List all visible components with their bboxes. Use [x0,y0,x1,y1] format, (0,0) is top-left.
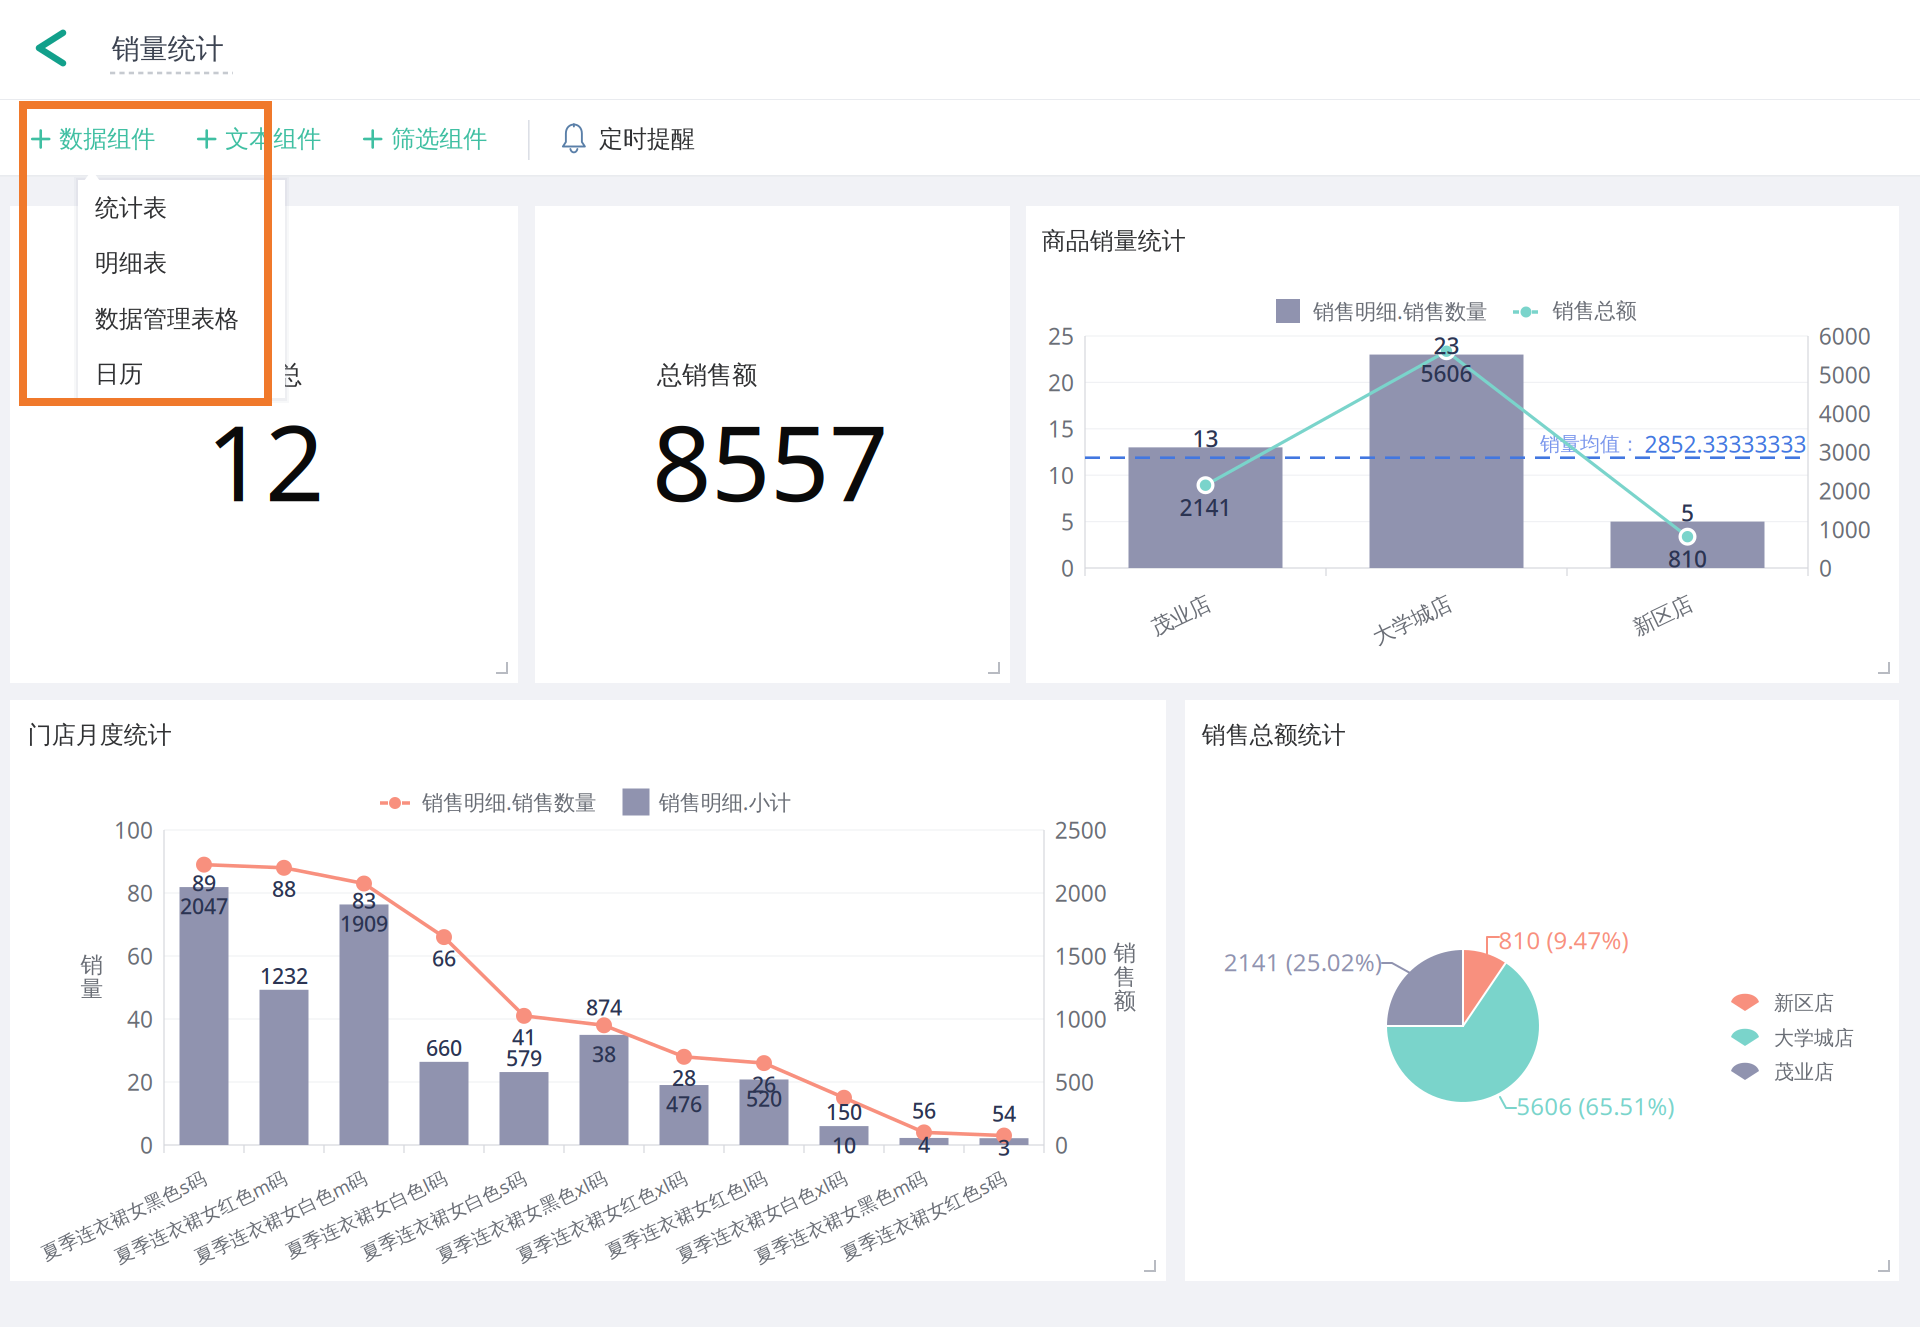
staticText: 大学城店 [1774,1026,1854,1050]
staticText: 810 [1668,544,1707,574]
staticText: 2000 [1055,878,1107,908]
staticText: 2000 [1819,476,1871,506]
staticText: 1232 [260,962,308,990]
staticText: 夏季连衣裙女黑色s码 [34,1203,214,1228]
staticText: 茂业店 [1149,603,1212,629]
staticText: 商品销量统计 [1042,226,1186,256]
staticText: 5 [1061,506,1074,537]
staticText: 10 [832,1131,856,1159]
staticText: 476 [666,1090,702,1118]
staticText: 13 [1192,423,1218,453]
staticText: 大学城店 [1370,607,1454,633]
staticText: 25 [1048,321,1074,351]
staticText: 5 [1681,497,1694,528]
staticText: 统计表 [95,193,167,223]
staticText: 2141 [1179,492,1231,522]
staticText: 销 [80,951,103,979]
staticText: 150 [826,1098,862,1126]
staticText: 89 [192,869,216,897]
button[interactable]: 日历 [78,347,285,401]
staticText: 1000 [1819,514,1871,544]
staticText: 额 [1113,987,1136,1015]
staticText: 茂业店 [1774,1060,1834,1084]
staticText: 售 [1113,963,1136,991]
staticText: 销量统计 [112,32,224,66]
staticText: 夏季连衣裙女白色xl码 [669,1204,855,1229]
staticText: 数据管理表格 [95,304,239,334]
staticText: 40 [127,1004,153,1034]
staticText: 新区店 [1774,991,1834,1015]
staticText: 54 [992,1099,1016,1128]
staticText: 874 [586,993,622,1021]
staticText: 4 [918,1130,930,1158]
button[interactable]: Back [14,10,88,86]
staticText: 夏季连衣裙女红色l码 [598,1202,774,1227]
staticText: 1500 [1055,941,1107,971]
button[interactable]: 明细表 [78,236,285,290]
staticText: 筛选组件 [391,124,487,154]
staticText: 夏季连衣裙女红色s码 [834,1203,1014,1228]
staticText: 0 [1055,1130,1068,1160]
button[interactable]: 数据管理表格 [78,292,285,346]
staticText: 660 [426,1034,462,1062]
staticText: 定时提醒 [599,124,695,154]
staticText: 销售明细.小计 [659,788,791,816]
staticText: 810 (9.47%) [1499,924,1629,956]
staticText: 2141 (25.02%) [1224,946,1382,978]
staticText: 1000 [1055,1004,1107,1034]
staticText: 4000 [1819,398,1871,428]
button[interactable]: 定时提醒 [562,110,695,167]
staticText: 数据组件 [59,124,155,154]
staticText: 20 [1048,367,1074,397]
staticText: 新区店 [1631,603,1694,629]
staticText: 总销售额 [657,359,757,390]
staticText: 夏季连衣裙女黑色m码 [746,1205,934,1229]
staticText: 15 [1048,414,1074,444]
staticText: 夏季连衣裙女黑色xl码 [429,1204,615,1229]
staticText: 1909 [340,909,388,938]
staticText: 2047 [180,892,228,920]
staticText: 520 [746,1084,782,1113]
staticText: 28 [672,1064,696,1092]
staticText: 8557 [652,392,888,530]
staticText: 明细表 [95,248,167,278]
staticText: 5606 (65.51%) [1516,1090,1674,1122]
staticText: 10 [1048,460,1074,490]
staticText: 5000 [1819,360,1871,390]
staticText: 门店月度统计 [28,720,172,750]
staticText: 日历 [95,359,143,389]
staticText: 销售总额 [1553,298,1637,324]
staticText: 23 [1433,330,1459,361]
staticText: 5606 [1420,358,1472,388]
staticText: 66 [432,944,456,972]
staticText: 83 [352,886,376,915]
staticText: 量 [80,975,103,1003]
staticText: 3 [998,1133,1010,1162]
staticText: 41 [512,1023,536,1051]
staticText: 26 [752,1070,776,1098]
staticText: 100 [114,815,153,845]
staticText: 0 [1819,553,1832,583]
button[interactable]: 文本组件 [198,106,321,172]
button[interactable]: 筛选组件 [364,106,487,172]
button[interactable]: 数据组件 [32,106,155,172]
staticText: 销量均值： [1540,432,1640,456]
staticText: 56 [912,1096,936,1124]
staticText: 2852.33333333 [1645,429,1807,459]
staticText: 夏季连衣裙女白色l码 [278,1202,454,1227]
staticText: 销售明细.销售数量 [422,788,596,816]
staticText: 夏季连衣裙女白色s码 [354,1203,534,1228]
staticText: 12 [206,392,324,530]
staticText: 500 [1055,1067,1094,1097]
staticText: 38 [592,1040,616,1068]
staticText: 夏季连衣裙女白色m码 [186,1205,374,1229]
button[interactable]: 统计表 [78,181,285,235]
staticText: 579 [506,1044,542,1072]
staticText: 6000 [1819,321,1871,351]
staticText: 销售总额统计 [1202,720,1346,750]
staticText: 数据汇总 [202,359,302,390]
staticText: 60 [127,941,153,971]
staticText: 文本组件 [225,124,321,154]
staticText: 0 [1061,553,1074,583]
staticText: 20 [127,1067,153,1097]
